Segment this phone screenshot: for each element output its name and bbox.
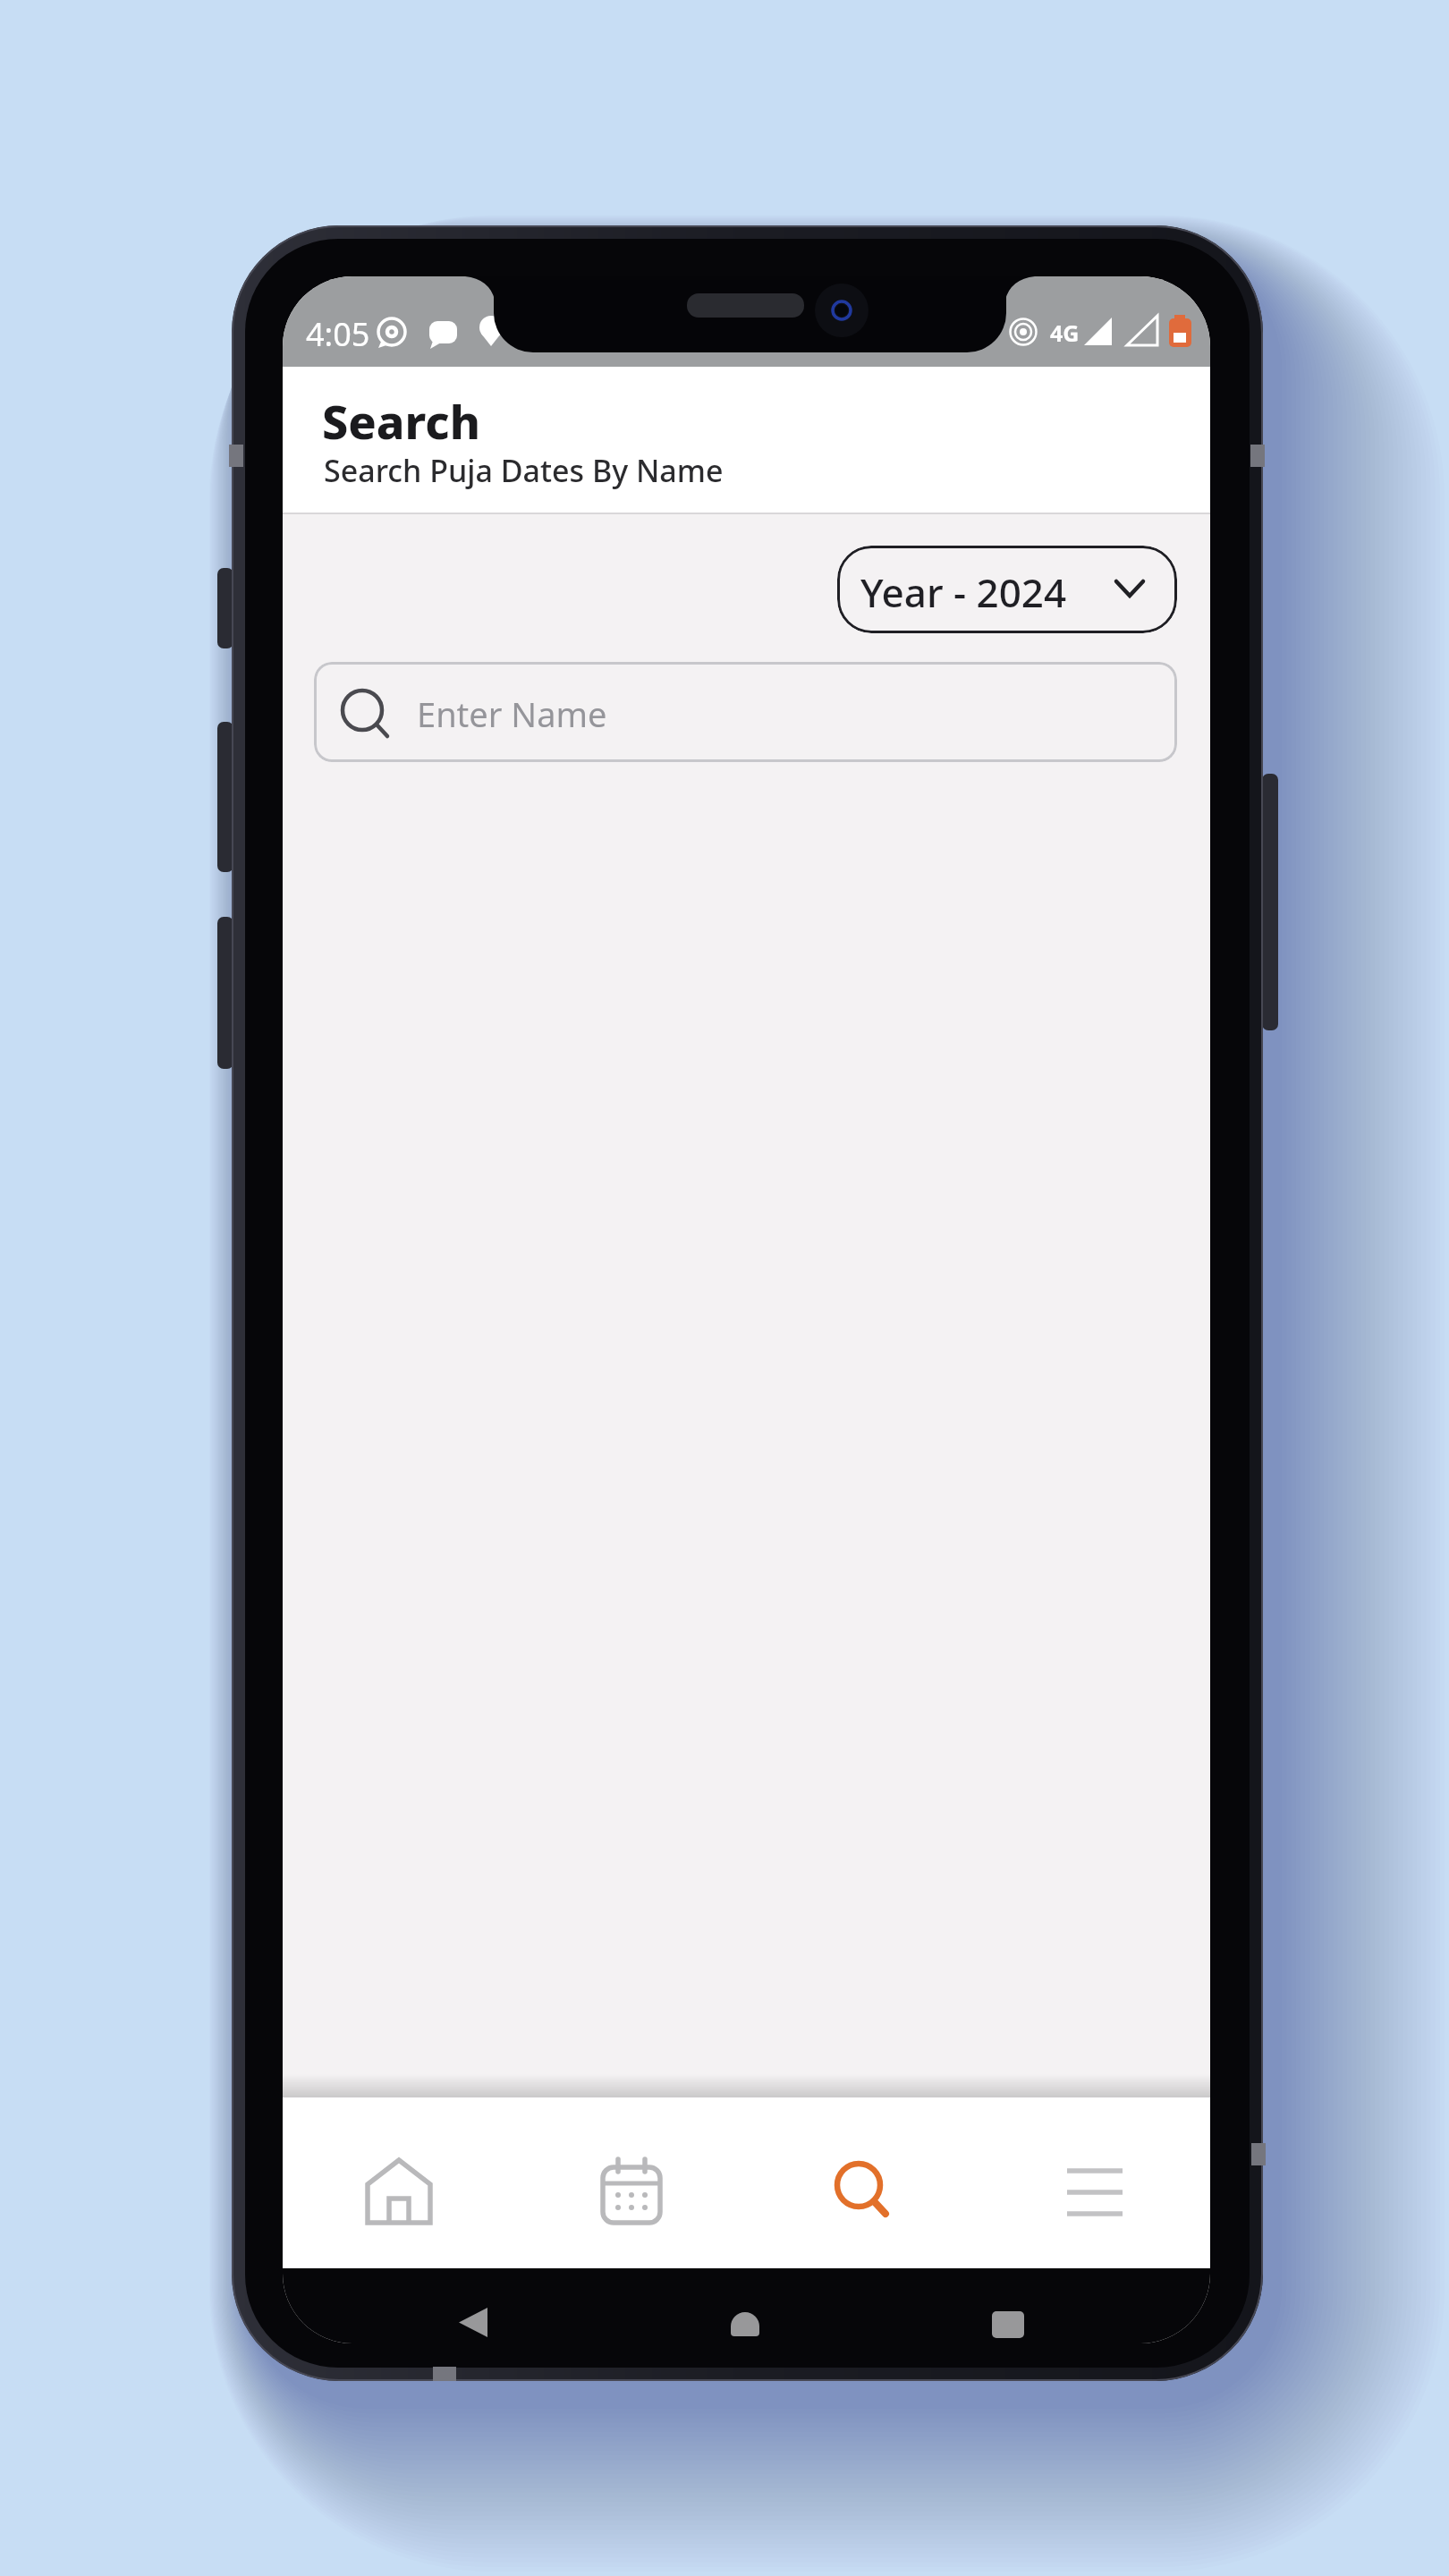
button[interactable] [283,2097,515,2268]
staticText: 4G [1050,318,1080,348]
button[interactable] [515,2097,747,2268]
staticText: Year - 2024 [860,565,1067,619]
staticText: Search Puja Dates By Name [324,450,724,491]
staticText: Search [322,389,480,453]
button[interactable]: Enter Name [314,662,1177,762]
staticText: 4:05 [306,312,370,356]
button[interactable] [992,2311,1024,2338]
button[interactable] [731,2312,759,2336]
button[interactable]: Year - 2024 [837,546,1177,633]
button[interactable] [979,2097,1210,2268]
button[interactable] [747,2097,979,2268]
button[interactable] [453,2301,494,2343]
staticText: Enter Name [417,691,607,737]
